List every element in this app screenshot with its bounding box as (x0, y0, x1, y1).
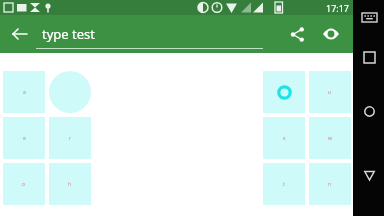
staticText: t (283, 181, 285, 188)
button[interactable]: Back (356, 162, 382, 188)
button[interactable]: type test (36, 19, 263, 49)
button[interactable]: Share (283, 20, 311, 48)
button[interactable]: s (263, 117, 305, 159)
staticText: h (68, 181, 72, 188)
button[interactable]: Back (6, 20, 34, 48)
button[interactable]: Home (356, 98, 382, 124)
button[interactable]: e (3, 117, 45, 159)
staticText: type test (42, 25, 95, 43)
staticText: e (23, 135, 26, 142)
button[interactable]: n (309, 163, 351, 205)
button[interactable]: w (309, 117, 351, 159)
button[interactable]: o (3, 163, 45, 205)
button[interactable]: u (309, 71, 351, 113)
button[interactable]: t (263, 163, 305, 205)
button[interactable] (49, 71, 91, 113)
button[interactable]: Keyboard (356, 4, 382, 30)
staticText: o (22, 181, 26, 188)
staticText: s (283, 135, 286, 142)
staticText: u (328, 89, 332, 96)
button[interactable]: h (49, 163, 91, 205)
button[interactable]: a (3, 71, 45, 113)
staticText: a (23, 89, 26, 96)
staticText: r (69, 135, 72, 142)
button[interactable] (263, 71, 305, 113)
staticText: w (328, 135, 332, 142)
button[interactable]: Recent apps (356, 44, 382, 70)
button[interactable]: Preview (317, 20, 345, 48)
staticText: n (328, 181, 332, 188)
staticText: 17:17 (326, 2, 350, 14)
